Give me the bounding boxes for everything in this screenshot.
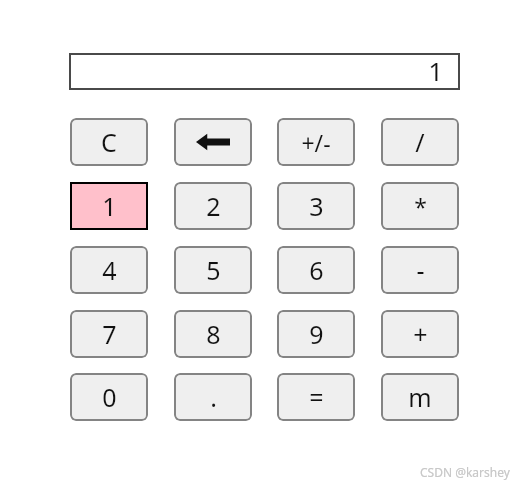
staticText: 8 <box>206 317 221 351</box>
staticText: 1 <box>102 189 117 223</box>
button[interactable]: - <box>381 246 459 294</box>
staticText: / <box>415 125 425 159</box>
staticText: - <box>416 253 425 287</box>
button[interactable]: m <box>381 373 459 421</box>
button[interactable]: +/- <box>277 118 355 166</box>
button[interactable]: = <box>277 373 355 421</box>
staticText: + <box>413 317 428 351</box>
staticText: 9 <box>309 317 324 351</box>
button[interactable]: 6 <box>277 246 355 294</box>
staticText: 2 <box>206 189 221 223</box>
staticText: . <box>210 380 217 414</box>
button[interactable]: 5 <box>174 246 252 294</box>
staticText: m <box>408 380 432 414</box>
staticText: 6 <box>309 253 324 287</box>
button[interactable]: / <box>381 118 459 166</box>
button[interactable]: 8 <box>174 310 252 358</box>
staticText: C <box>101 125 117 159</box>
staticText: CSDN @karshey <box>420 464 510 480</box>
button[interactable]: 2 <box>174 182 252 230</box>
staticText: 1 <box>428 53 443 88</box>
button[interactable]: 9 <box>277 310 355 358</box>
button[interactable]: 0 <box>70 373 148 421</box>
button[interactable]: C <box>70 118 148 166</box>
button[interactable]: 4 <box>70 246 148 294</box>
staticText: 7 <box>102 317 117 351</box>
button[interactable]: 1 <box>70 182 148 230</box>
staticText: 4 <box>102 253 117 287</box>
button[interactable]: * <box>381 182 459 230</box>
staticText: = <box>309 380 324 414</box>
staticText: 0 <box>102 380 117 414</box>
button[interactable]: . <box>174 373 252 421</box>
staticText: +/- <box>301 127 331 158</box>
button[interactable]: 1 <box>69 53 460 90</box>
button[interactable]: + <box>381 310 459 358</box>
staticText: 5 <box>206 253 221 287</box>
button[interactable]: 7 <box>70 310 148 358</box>
staticText: * <box>414 191 427 222</box>
staticText: 3 <box>309 189 324 223</box>
button[interactable]: 3 <box>277 182 355 230</box>
button[interactable]: Backspace <box>174 118 252 166</box>
